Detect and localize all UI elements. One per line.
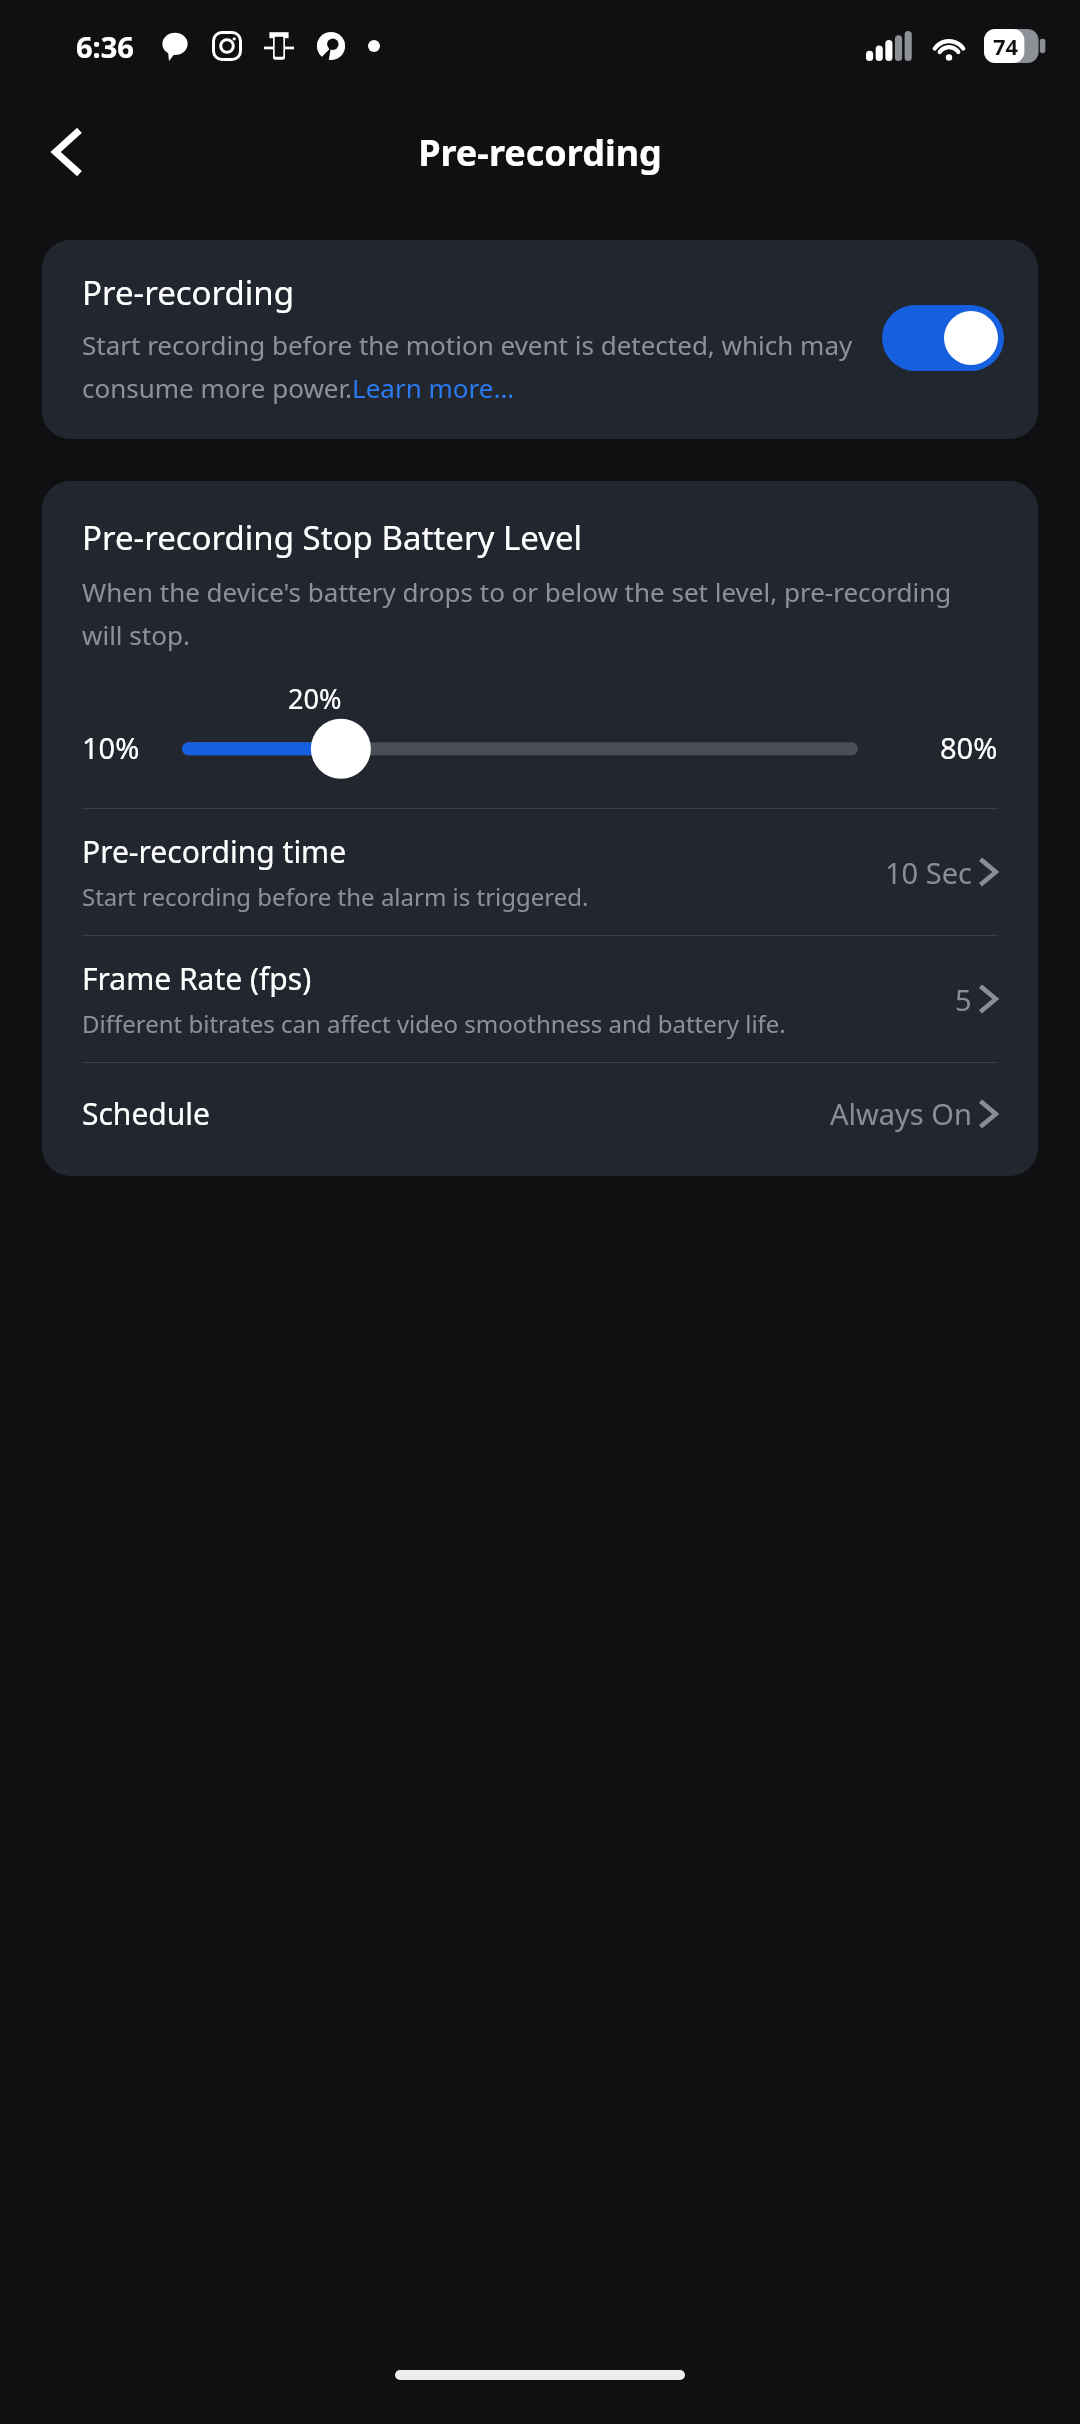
staticText: Pre-recording bbox=[418, 128, 662, 177]
staticText: Start recording before the alarm is trig… bbox=[82, 880, 589, 913]
staticText: Always On bbox=[830, 1094, 972, 1133]
staticText: 80% bbox=[940, 728, 998, 767]
button[interactable]: Frame Rate (fps) bbox=[42, 936, 1038, 1062]
staticText: 10 Sec bbox=[885, 853, 972, 892]
staticText: Pre-recording bbox=[82, 270, 295, 315]
staticText: Pre-recording Stop Battery Level bbox=[82, 515, 583, 560]
staticText: Different bitrates can affect video smoo… bbox=[82, 1007, 786, 1040]
staticText: 20% bbox=[288, 680, 342, 717]
button[interactable]: Pre-recording time bbox=[42, 809, 1038, 935]
button[interactable]: Back bbox=[36, 122, 96, 182]
staticText: 10% bbox=[82, 728, 140, 767]
staticText: 74 bbox=[993, 31, 1019, 61]
staticText: When the device's battery drops to or be… bbox=[82, 574, 998, 652]
button[interactable]: Pre-recording bbox=[42, 240, 1038, 439]
staticText: Start recording before the motion event … bbox=[82, 327, 862, 405]
staticText: Pre-recording time bbox=[82, 831, 347, 872]
staticText: 6:36 bbox=[76, 27, 134, 66]
button[interactable]: Battery level slider bbox=[42, 678, 1038, 796]
button[interactable]: Schedule bbox=[42, 1063, 1038, 1164]
staticText: Frame Rate (fps) bbox=[82, 958, 312, 999]
staticText: Schedule bbox=[82, 1093, 830, 1134]
staticText: 5 bbox=[955, 980, 972, 1019]
button[interactable]: Pre-recording toggle bbox=[882, 305, 1004, 371]
